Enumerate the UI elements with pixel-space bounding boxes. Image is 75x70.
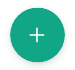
button[interactable]: Add [10, 7, 65, 62]
